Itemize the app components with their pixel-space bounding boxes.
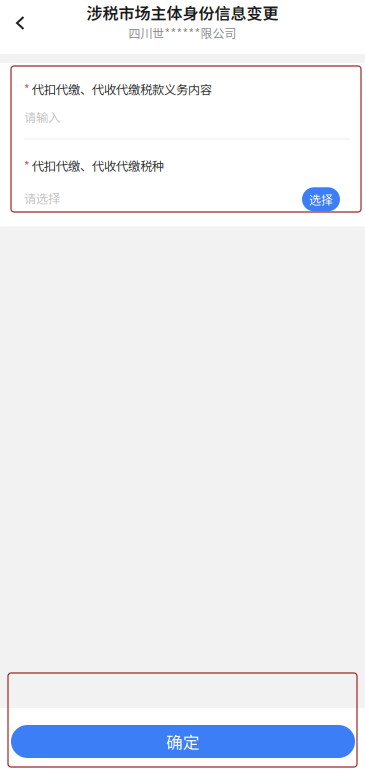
staticText: 请输入 <box>24 108 60 126</box>
staticText: 四川世******限公司 <box>128 24 236 42</box>
staticText: * <box>24 157 30 174</box>
button[interactable]: 选择 <box>302 184 340 211</box>
staticText: 代扣代缴、代收代缴税款义务内容 <box>32 80 212 98</box>
staticText: * <box>24 80 30 98</box>
staticText: 请选择 <box>24 189 60 207</box>
button[interactable]: 确定 <box>11 725 355 758</box>
button[interactable]: 返回 <box>0 0 44 46</box>
staticText: 确定 <box>166 729 200 753</box>
staticText: 选择 <box>309 191 333 208</box>
staticText: 代扣代缴、代收代缴税种 <box>32 156 164 174</box>
staticText: 涉税市场主体身份信息变更 <box>86 1 278 24</box>
